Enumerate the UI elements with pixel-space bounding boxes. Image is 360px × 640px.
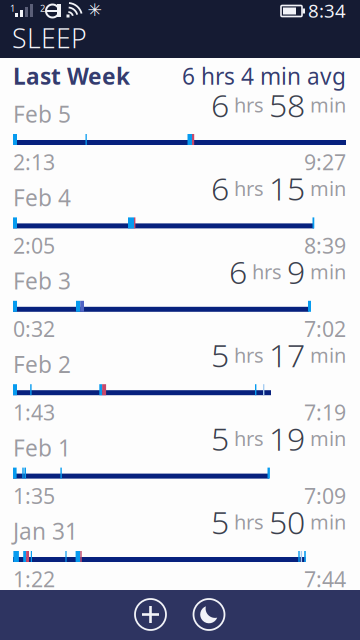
staticText: 6 xyxy=(229,250,247,293)
button[interactable]: Add sleep entry xyxy=(0,0,360,640)
staticText: 9:27 xyxy=(304,148,346,176)
staticText: min xyxy=(305,175,346,201)
staticText: Last Week xyxy=(13,61,130,91)
staticText: min xyxy=(305,91,346,118)
staticText: hrs xyxy=(229,425,269,452)
staticText: 7:09 xyxy=(304,481,346,510)
staticText: 7:44 xyxy=(304,565,346,593)
staticText: 1 xyxy=(10,2,15,14)
staticText: 6 hrs 4 min avg xyxy=(182,61,346,91)
staticText: 8:39 xyxy=(304,231,346,259)
staticText: 5 xyxy=(211,417,229,460)
staticText: Feb 1 xyxy=(13,432,71,463)
staticText: Feb 2 xyxy=(13,349,71,379)
staticText: 5 xyxy=(211,334,229,376)
button[interactable]: More options xyxy=(0,0,360,640)
staticText: 2:05 xyxy=(13,231,55,259)
staticText: 0:32 xyxy=(13,315,55,343)
staticText: Jan 31 xyxy=(13,516,78,546)
staticText: min xyxy=(305,258,346,285)
staticText: 6 xyxy=(211,83,229,126)
staticText: Feb 5 xyxy=(13,99,71,129)
staticText: 15 xyxy=(269,167,305,209)
staticText: 5 xyxy=(211,500,229,543)
staticText: min xyxy=(305,508,346,535)
staticText: 19 xyxy=(269,417,305,460)
staticText: 1:43 xyxy=(13,398,55,426)
staticText: 7:02 xyxy=(304,315,346,343)
staticText: hrs xyxy=(229,508,269,535)
staticText: min xyxy=(305,342,346,368)
staticText: 50 xyxy=(269,500,305,543)
staticText: 58 xyxy=(269,83,305,126)
staticText: hrs xyxy=(229,175,269,201)
staticText: 8:34 xyxy=(308,0,346,23)
staticText: Feb 4 xyxy=(13,182,71,212)
staticText: ✳ xyxy=(87,0,102,20)
button[interactable]: Sleep mode xyxy=(0,0,360,640)
staticText: 2:13 xyxy=(13,148,55,176)
staticText: 1:22 xyxy=(13,565,55,593)
staticText: 7:19 xyxy=(304,398,346,426)
staticText: 1:35 xyxy=(13,481,55,510)
staticText: 17 xyxy=(269,334,305,376)
staticText: 2 xyxy=(40,2,45,14)
staticText: Feb 3 xyxy=(13,266,71,296)
staticText: hrs xyxy=(229,91,269,118)
staticText: SLEEP xyxy=(12,20,87,56)
staticText: hrs xyxy=(229,342,269,368)
staticText: 6 xyxy=(211,167,229,209)
staticText: 9 xyxy=(287,250,305,293)
staticText: hrs xyxy=(247,258,287,285)
staticText: min xyxy=(305,425,346,452)
